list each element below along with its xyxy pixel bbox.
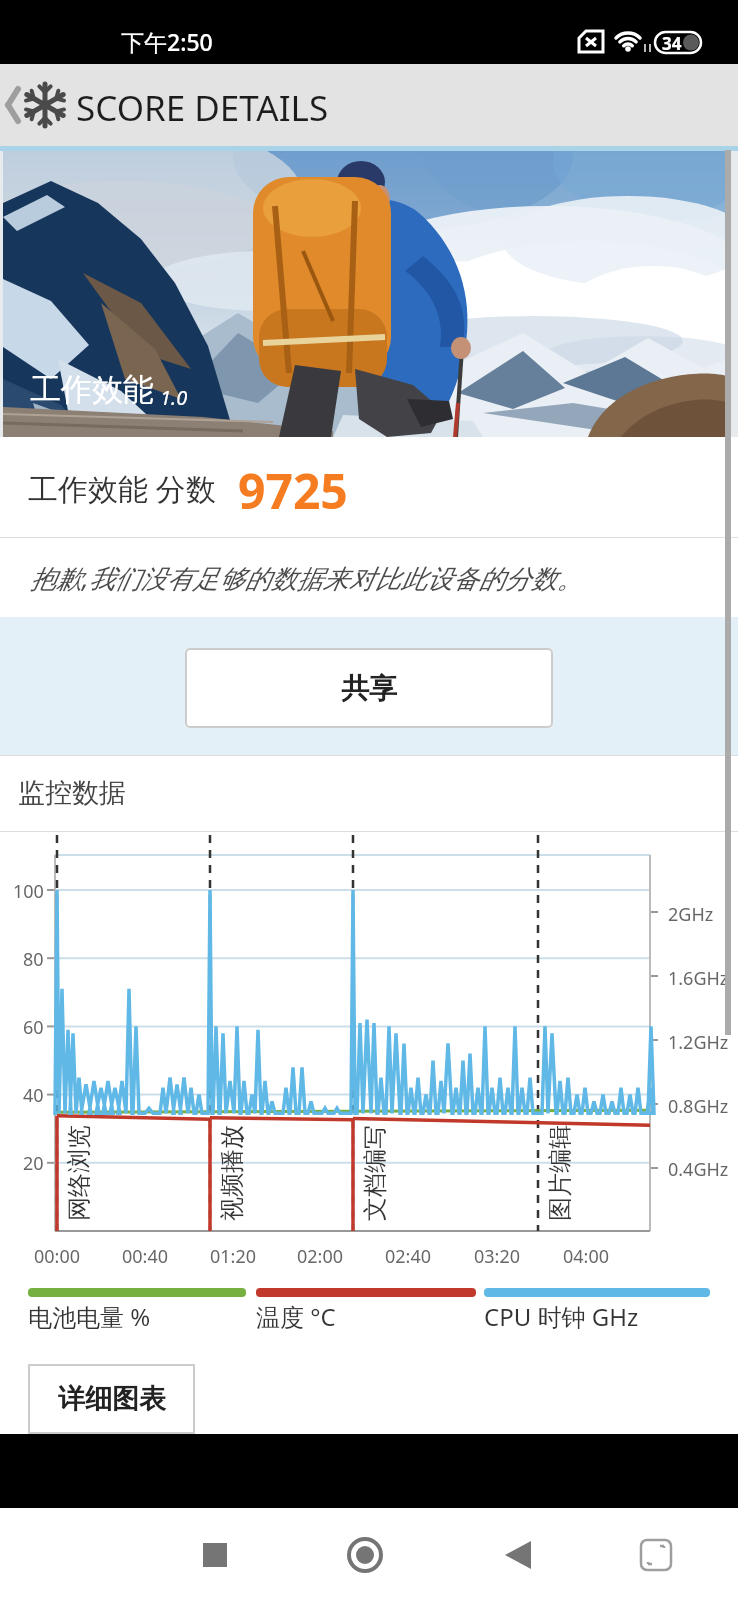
button[interactable] — [330, 1518, 400, 1588]
staticText: 00:40 — [122, 1244, 169, 1269]
staticText: 60 — [23, 1015, 44, 1040]
staticText: 40 — [23, 1083, 44, 1108]
staticText: 下午2:50 — [121, 26, 213, 57]
staticText: 监控数据 — [18, 776, 126, 810]
staticText: 温度 °C — [256, 1300, 336, 1333]
staticText: 视频播放 — [217, 1125, 247, 1221]
staticText: 0.4GHz — [668, 1157, 729, 1182]
button[interactable] — [0, 1508, 738, 1600]
staticText: 共享 — [341, 671, 397, 706]
staticText: 80 — [23, 947, 44, 972]
staticText: 工作效能 分数 — [28, 468, 216, 509]
staticText: 2GHz — [668, 902, 714, 927]
staticText: 02:00 — [297, 1244, 344, 1269]
staticText: 00:00 — [34, 1244, 81, 1269]
staticText: SCORE DETAILS — [76, 84, 329, 132]
staticText: 0.8GHz — [668, 1094, 729, 1119]
staticText: 1.0 — [160, 384, 188, 411]
staticText: 9725 — [238, 458, 348, 523]
staticText: 100 — [13, 879, 44, 904]
staticText: 01:20 — [210, 1244, 257, 1269]
staticText: 34 — [662, 32, 682, 55]
staticText: 电池电量 % — [28, 1300, 151, 1333]
staticText: 02:40 — [385, 1244, 432, 1269]
staticText: 详细图表 — [58, 1382, 166, 1416]
staticText: 1.2GHz — [668, 1030, 729, 1055]
staticText: CPU 时钟 GHz — [484, 1300, 639, 1333]
staticText: 网络浏览 — [64, 1125, 94, 1221]
staticText: 1.6GHz — [668, 966, 729, 991]
button[interactable]: 详细图表 — [28, 1364, 195, 1434]
staticText: 03:20 — [474, 1244, 521, 1269]
staticText: 04:00 — [563, 1244, 610, 1269]
button[interactable] — [485, 1518, 555, 1588]
staticText: 文档编写 — [360, 1125, 390, 1221]
staticText: 20 — [23, 1151, 44, 1176]
staticText: 图片编辑 — [545, 1125, 575, 1221]
button[interactable]: 共享 — [185, 648, 553, 728]
button[interactable] — [620, 1518, 690, 1588]
button[interactable] — [180, 1518, 250, 1588]
staticText: 工作效能 — [30, 370, 154, 409]
staticText: 抱歉,我们没有足够的数据来对比此设备的分数。 — [30, 560, 583, 596]
button[interactable]: SCORE DETAILS — [0, 64, 738, 146]
